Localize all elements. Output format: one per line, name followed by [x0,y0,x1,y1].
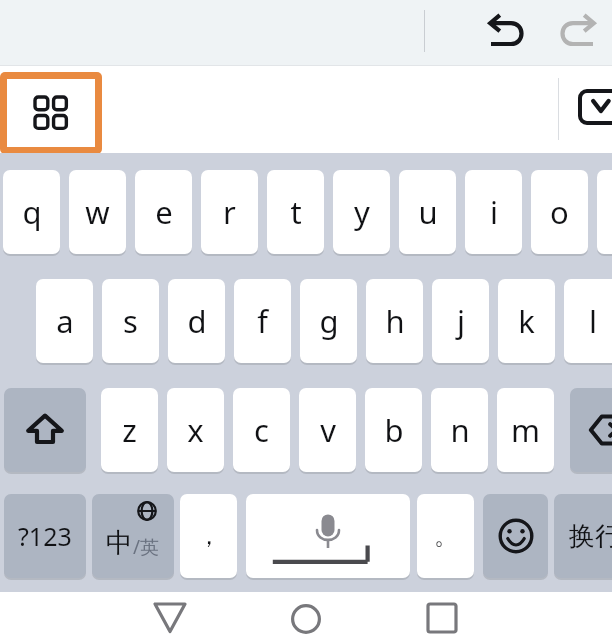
staticText: w [85,191,110,233]
staticText: i [490,191,498,233]
button[interactable]: i [465,170,522,254]
button[interactable]: 。 [417,494,474,578]
staticText: z [122,409,137,451]
staticText: 中 [106,526,133,560]
button[interactable]: Home [266,592,346,635]
staticText: e [155,191,173,233]
button[interactable]: ， [180,494,237,578]
staticText: k [518,300,535,342]
button[interactable]: t [267,170,324,254]
button[interactable]: a [36,279,93,363]
button[interactable]: Redo [548,4,606,60]
button[interactable]: Space [246,494,410,578]
button[interactable]: Backspace [570,388,612,472]
staticText: ， [197,521,221,551]
staticText: l [589,300,597,342]
staticText: m [511,409,540,451]
staticText: h [385,300,405,342]
button[interactable]: w [69,170,126,254]
button[interactable]: u [399,170,456,254]
staticText: x [187,409,204,451]
staticText: t [290,191,302,233]
button[interactable]: s [102,279,159,363]
button[interactable]: g [300,279,357,363]
button[interactable]: Emoji [483,494,548,578]
staticText: j [457,300,465,342]
button[interactable]: o [531,170,588,254]
button[interactable]: k [498,279,555,363]
staticText: y [354,191,370,233]
button[interactable]: y [333,170,390,254]
button[interactable]: Shift [4,388,86,472]
button[interactable]: z [101,388,158,472]
button[interactable]: r [201,170,258,254]
button[interactable]: Switch language [92,494,174,578]
staticText: 。 [434,521,458,551]
button[interactable]: Recents [402,592,482,635]
button[interactable]: v [299,388,356,472]
button[interactable]: j [432,279,489,363]
staticText: a [56,300,74,342]
button[interactable]: ?123 [4,494,86,578]
button[interactable]: m [497,388,554,472]
button[interactable]: Toolbar menu [0,72,102,154]
staticText: o [550,191,569,233]
staticText: n [450,409,470,451]
staticText: v [320,409,336,451]
button[interactable]: c [233,388,290,472]
button[interactable]: Hide keyboard [578,86,612,132]
staticText: 换行 [569,520,612,553]
button[interactable]: n [431,388,488,472]
staticText: d [187,300,207,342]
staticText: g [319,300,339,342]
button[interactable]: Undo [478,4,536,60]
staticText: c [254,409,269,451]
staticText: s [123,300,138,342]
button[interactable]: p [597,170,612,254]
button[interactable]: e [135,170,192,254]
staticText: q [22,191,42,233]
staticText: /英 [133,534,160,560]
staticText: u [418,191,438,233]
button[interactable]: b [365,388,422,472]
staticText: f [257,300,268,342]
button[interactable]: x [167,388,224,472]
button[interactable]: f [234,279,291,363]
staticText: b [384,409,404,451]
button[interactable]: q [3,170,60,254]
staticText: r [223,191,236,233]
button[interactable]: Enter [554,494,612,578]
button[interactable]: Back [130,592,210,635]
staticText: ?123 [18,519,72,553]
button[interactable]: h [366,279,423,363]
button[interactable]: d [168,279,225,363]
button[interactable]: l [564,279,612,363]
